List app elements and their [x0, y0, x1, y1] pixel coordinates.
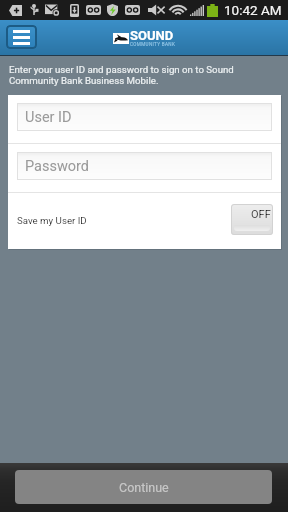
staticText: Continue: [119, 480, 169, 495]
staticText: 10:42 AM: [224, 2, 282, 18]
staticText: OFF: [251, 208, 271, 221]
staticText: Enter your user ID and password to sign …: [9, 64, 268, 86]
staticText: SOUND: [130, 28, 174, 43]
button[interactable]: Open navigation menu: [6, 25, 37, 49]
button[interactable]: Save my User ID, off: [231, 204, 273, 235]
staticText: User ID: [25, 109, 72, 126]
staticText: COMMUNITY BANK: [130, 42, 176, 47]
staticText: Password: [25, 158, 90, 175]
button[interactable]: User ID: [17, 103, 272, 131]
staticText: Save my User ID: [17, 215, 87, 226]
button[interactable]: Continue: [15, 470, 272, 504]
button[interactable]: Password: [17, 152, 272, 180]
